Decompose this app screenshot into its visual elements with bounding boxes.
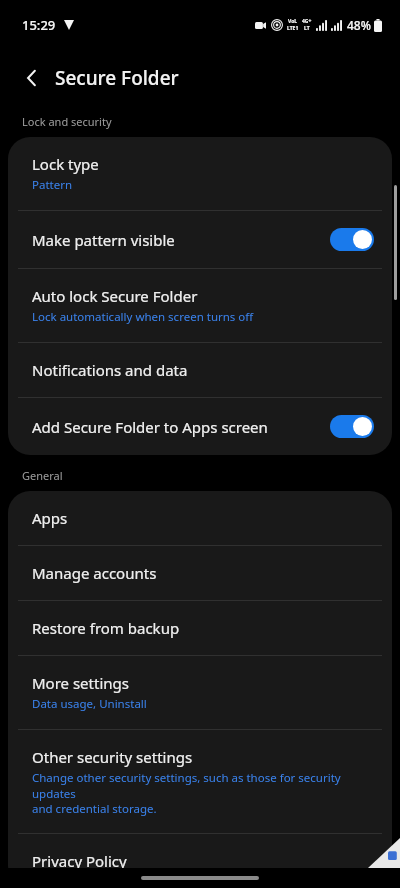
staticText: Secure Folder xyxy=(55,65,179,91)
staticText: Make pattern visible xyxy=(32,230,175,250)
staticText: Lock type xyxy=(32,154,99,174)
staticText: Change other security settings, such as … xyxy=(32,770,374,816)
button[interactable]: Notifications and data xyxy=(8,343,392,397)
button[interactable]: Manage accounts xyxy=(8,546,392,600)
button[interactable]: More settings xyxy=(8,656,392,729)
staticText: 15:29 xyxy=(22,16,56,34)
button[interactable]: Restore from backup xyxy=(8,601,392,655)
button[interactable]: Add Secure Folder to Apps screen xyxy=(8,398,392,455)
button[interactable]: Toggle on xyxy=(330,228,374,251)
button[interactable]: Apps xyxy=(8,491,392,545)
staticText: Auto lock Secure Folder xyxy=(32,286,198,306)
staticText: Data usage, Uninstall xyxy=(32,696,147,712)
staticText: Add Secure Folder to Apps screen xyxy=(32,417,268,437)
button[interactable]: Auto lock Secure Folder xyxy=(8,269,392,342)
staticText: More settings xyxy=(32,673,129,693)
staticText: Pattern xyxy=(32,177,73,193)
button[interactable]: Privacy Policy xyxy=(8,834,392,888)
staticText: General xyxy=(22,468,63,483)
staticText: Apps xyxy=(32,508,68,528)
button[interactable]: Make pattern visible xyxy=(8,211,392,268)
staticText: LTE1 xyxy=(287,25,299,32)
staticText: Restore from backup xyxy=(32,618,180,638)
staticText: 4G+ xyxy=(302,18,312,25)
button[interactable]: Other security settings xyxy=(8,730,392,833)
staticText: Notifications and data xyxy=(32,360,188,380)
button[interactable]: Toggle on xyxy=(330,415,374,438)
staticText: VoL xyxy=(288,18,298,25)
staticText: Privacy Policy xyxy=(32,851,127,871)
staticText: Manage accounts xyxy=(32,563,157,583)
staticText: 48% xyxy=(347,17,371,33)
staticText: Lock automatically when screen turns off xyxy=(32,309,254,325)
staticText: Other security settings xyxy=(32,747,193,767)
staticText: LT xyxy=(304,25,310,32)
staticText: Lock and security xyxy=(22,114,112,129)
button[interactable]: Back xyxy=(14,60,50,96)
button[interactable]: Lock type xyxy=(8,137,392,210)
